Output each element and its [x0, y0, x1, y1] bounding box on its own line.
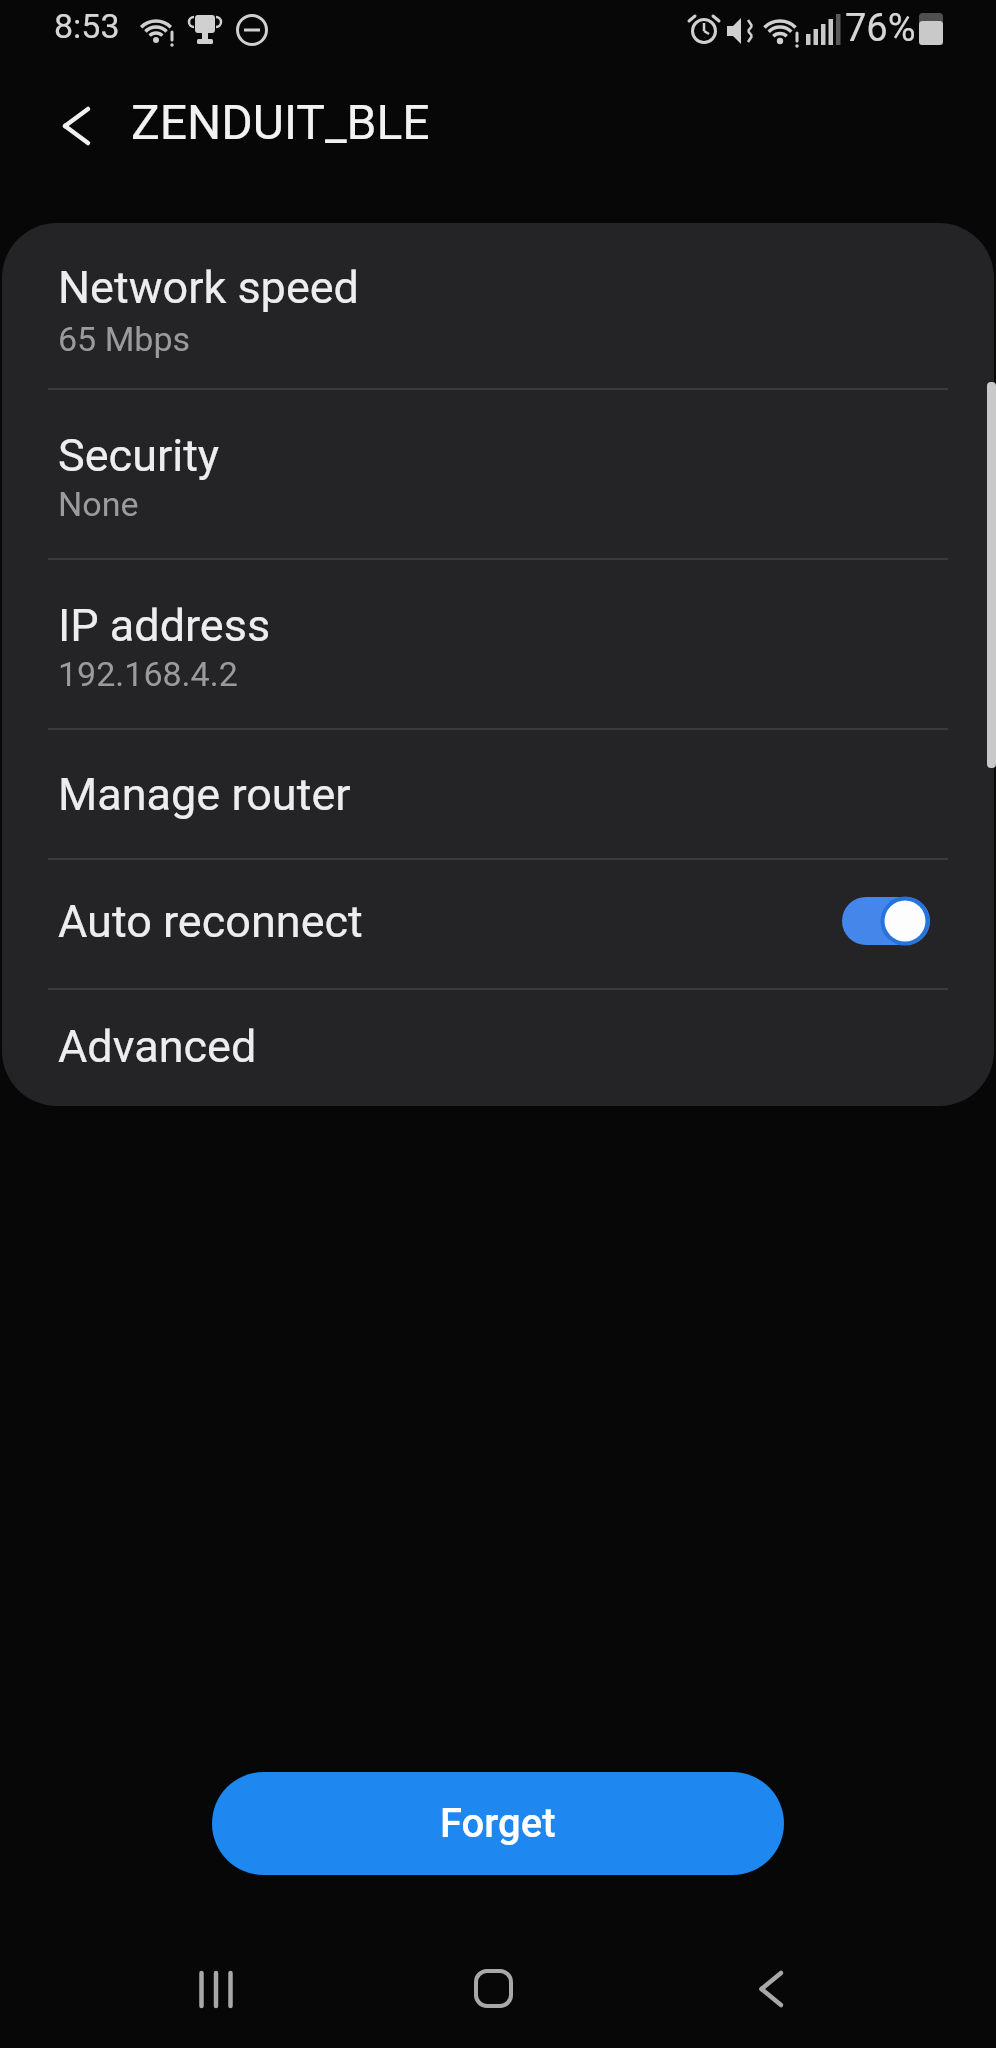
staticText: Advanced	[58, 1020, 257, 1073]
button[interactable]	[706, 1950, 841, 2030]
button[interactable]	[40, 92, 110, 162]
button[interactable]	[4, 388, 992, 558]
button[interactable]	[428, 1950, 563, 2030]
staticText: Auto reconnect	[58, 895, 363, 948]
button[interactable]	[4, 728, 992, 858]
staticText: 8:53	[54, 6, 120, 46]
button[interactable]	[150, 1950, 285, 2030]
staticText: 65 Mbps	[58, 319, 191, 359]
staticText: 192.168.4.2	[58, 654, 238, 694]
button[interactable]	[4, 858, 992, 988]
staticText: Network speed	[58, 261, 359, 314]
staticText: ZENDUIT_BLE	[131, 94, 430, 150]
staticText: 76%	[845, 6, 916, 51]
button[interactable]	[4, 988, 992, 1106]
staticText: Manage router	[58, 768, 351, 821]
staticText: None	[58, 484, 139, 524]
button[interactable]: Forget	[212, 1772, 784, 1875]
staticText: Forget	[440, 1800, 556, 1847]
staticText: Security	[58, 429, 220, 482]
staticText: IP address	[58, 599, 271, 652]
button[interactable]	[836, 891, 936, 953]
button[interactable]	[4, 223, 992, 388]
button[interactable]	[4, 558, 992, 728]
